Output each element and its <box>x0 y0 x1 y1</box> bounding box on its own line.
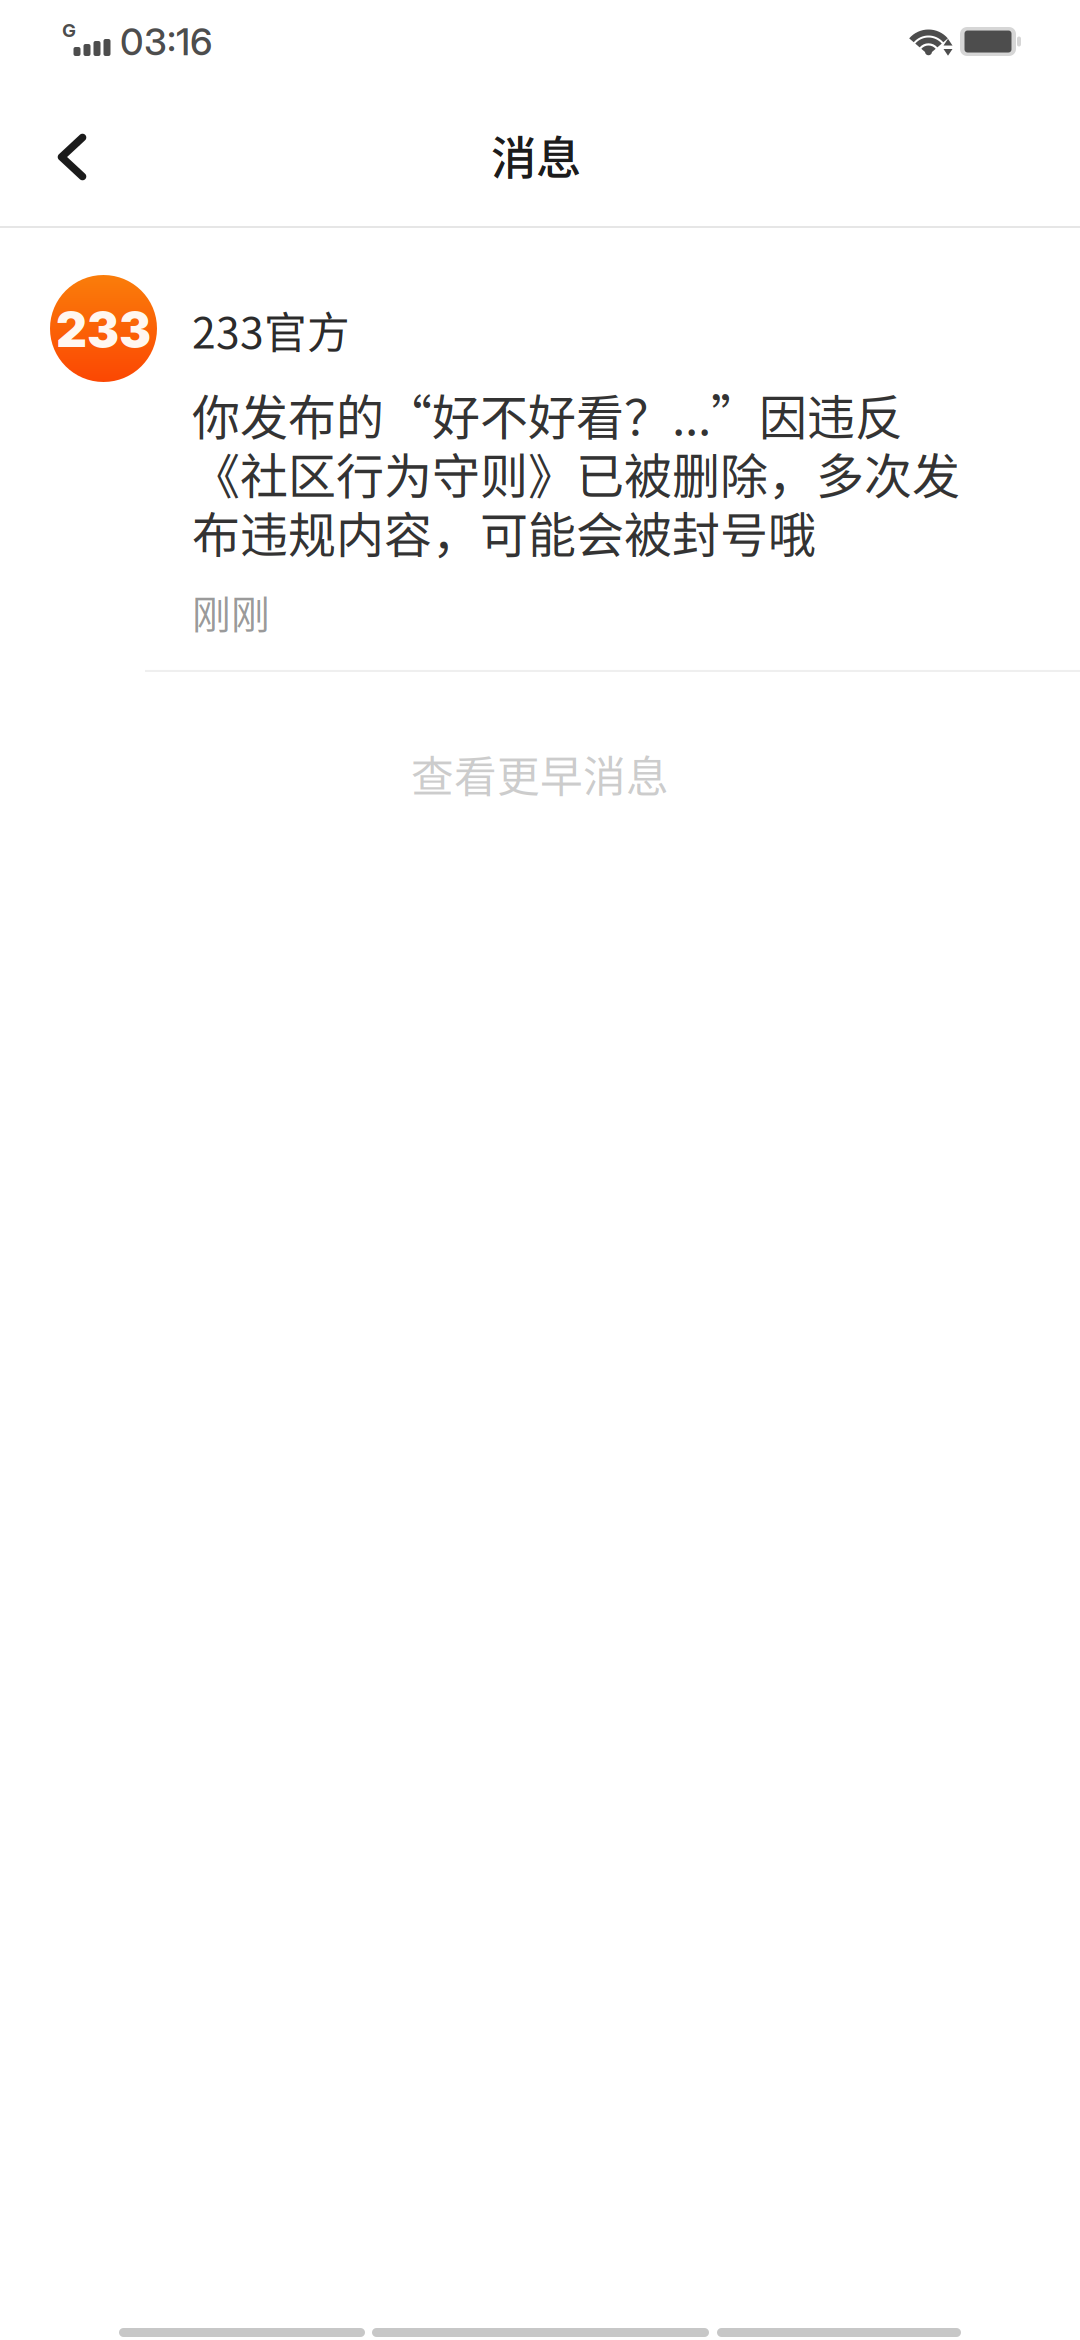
button[interactable]: 233 <box>0 275 1080 640</box>
staticText: 刚刚 <box>192 584 270 640</box>
staticText: 233 <box>56 300 151 359</box>
staticText: 查看更早消息 <box>411 743 669 805</box>
staticText: 你发布的“好不好看？...”因违反《社区行为守则》已被删除，多次发布违规内容，可… <box>192 385 960 561</box>
staticText: 消息 <box>491 122 581 188</box>
button[interactable]: Back <box>16 97 128 217</box>
staticText: G <box>62 19 76 42</box>
staticText: 233官方 <box>192 299 350 361</box>
button[interactable]: 查看更早消息 <box>0 722 1080 826</box>
staticText: 03:16 <box>120 19 213 64</box>
